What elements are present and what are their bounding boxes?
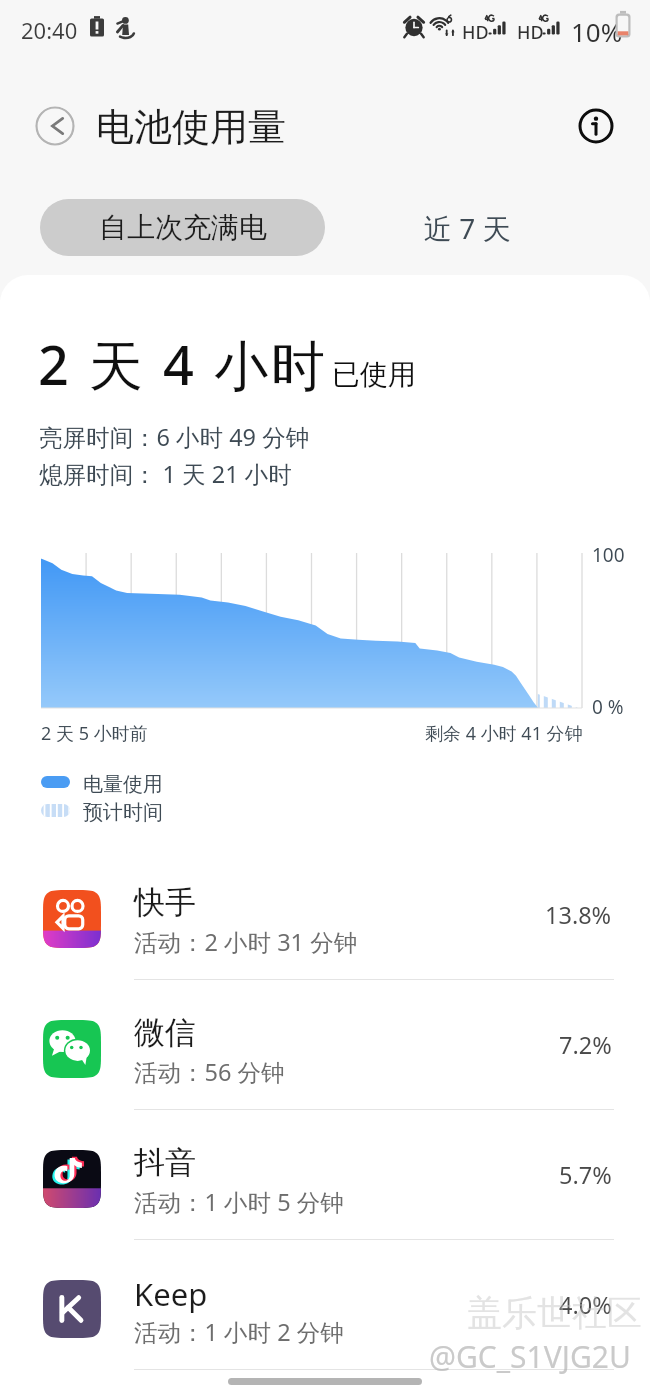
button[interactable]: 近 7 天 [390,199,545,256]
staticText: Keep [134,1273,208,1315]
staticText: 亮屏时间：6 小时 49 分钟 [39,421,310,453]
button[interactable]: 微信 [0,980,650,1110]
staticText: 活动：1 小时 2 分钟 [134,1316,344,1348]
staticText: 活动：1 小时 5 分钟 [134,1186,344,1218]
button[interactable]: 抖音 [0,1110,650,1240]
staticText: HD [517,20,544,45]
staticText: 20:40 [21,15,78,45]
staticText: 7.2% [559,1029,612,1061]
button[interactable]: Keep [0,1240,650,1370]
button[interactable]: Back [35,106,75,146]
staticText: @GC_S1VJG2U [429,1336,631,1377]
button[interactable]: 快手 [0,850,650,980]
staticText: 100 [592,542,625,568]
staticText: 已使用 [332,357,416,392]
staticText: 盖乐世社区 [467,1291,642,1335]
staticText: 自上次充满电 [99,210,267,245]
staticText: 快手 [134,883,196,922]
staticText: 4.0% [559,1289,612,1321]
button[interactable]: Information [576,106,616,146]
staticText: 活动：56 分钟 [134,1056,285,1088]
staticText: HD [462,20,489,45]
button[interactable]: 自上次充满电 [40,199,325,256]
staticText: 电池使用量 [96,103,286,151]
staticText: 预计时间 [83,800,163,825]
staticText: 2 天 5 小时前 [41,721,148,746]
staticText: 5.7% [559,1159,612,1191]
staticText: 近 7 天 [424,209,511,247]
staticText: 13.8% [545,899,612,931]
staticText: 微信 [134,1013,196,1052]
staticText: 10% [571,14,623,49]
staticText: 活动：2 小时 31 分钟 [134,926,358,958]
staticText: 熄屏时间： 1 天 21 小时 [39,458,292,490]
staticText: 抖音 [134,1143,196,1182]
staticText: 0 % [592,694,624,720]
staticText: 2 天 4 小时 [38,327,328,401]
staticText: 剩余 4 小时 41 分钟 [425,721,583,746]
staticText: 电量使用 [83,772,163,797]
